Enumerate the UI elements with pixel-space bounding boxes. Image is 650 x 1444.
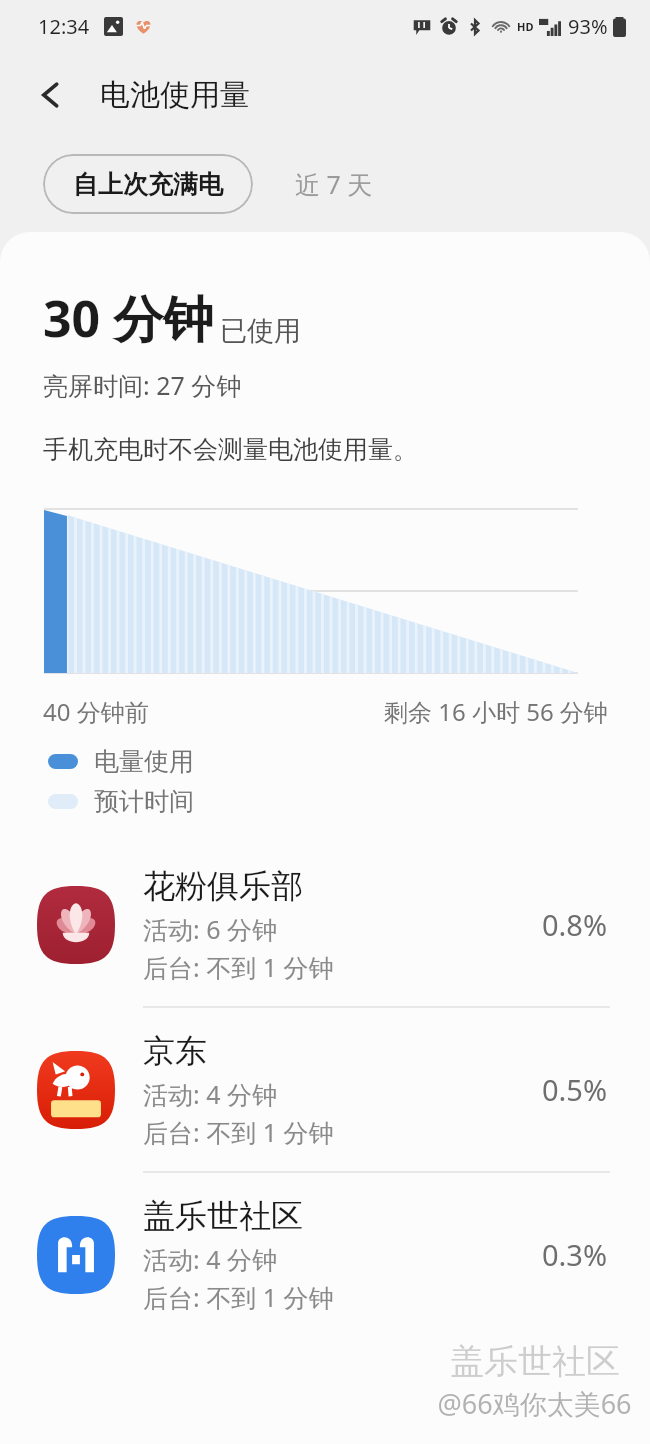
- staticText: 花粉俱乐部: [143, 866, 303, 906]
- staticText: 近 7 天: [295, 167, 373, 201]
- staticText: 亮屏时间: 27 分钟: [43, 368, 242, 402]
- staticText: 电量使用: [94, 746, 194, 777]
- staticText: 93%: [568, 13, 608, 40]
- staticText: 30 分钟: [43, 284, 214, 352]
- staticText: 后台: 不到 1 分钟: [143, 1115, 334, 1149]
- button[interactable]: 自上次充满电: [43, 154, 253, 214]
- staticText: @66鸡你太美66: [437, 1385, 632, 1422]
- staticText: 电池使用量: [100, 76, 250, 114]
- button[interactable]: 京东: [0, 1008, 650, 1173]
- staticText: 40 分钟前: [43, 695, 149, 728]
- staticText: 盖乐世社区: [143, 1196, 303, 1236]
- button[interactable]: 盖乐世社区: [0, 1173, 650, 1336]
- staticText: 活动: 4 分钟: [143, 1077, 278, 1111]
- staticText: 已使用: [220, 314, 301, 348]
- staticText: 自上次充满电: [73, 169, 223, 200]
- staticText: 手机充电时不会测量电池使用量。: [43, 434, 418, 465]
- staticText: 活动: 6 分钟: [143, 912, 278, 946]
- staticText: 0.5%: [542, 1070, 608, 1109]
- staticText: 0.3%: [542, 1235, 608, 1274]
- staticText: 12:34: [38, 13, 90, 40]
- staticText: 后台: 不到 1 分钟: [143, 1280, 334, 1314]
- staticText: 盖乐世社区: [450, 1340, 620, 1383]
- staticText: 预计时间: [94, 786, 194, 817]
- staticText: HD: [517, 19, 534, 34]
- staticText: 活动: 4 分钟: [143, 1242, 278, 1276]
- staticText: 京东: [143, 1031, 207, 1071]
- button[interactable]: 近 7 天: [253, 154, 415, 214]
- staticText: 0.8%: [542, 905, 608, 944]
- staticText: 后台: 不到 1 分钟: [143, 950, 334, 984]
- button[interactable]: Back: [26, 70, 76, 120]
- staticText: 剩余 16 小时 56 分钟: [384, 695, 608, 728]
- button[interactable]: 花粉俱乐部: [0, 843, 650, 1008]
